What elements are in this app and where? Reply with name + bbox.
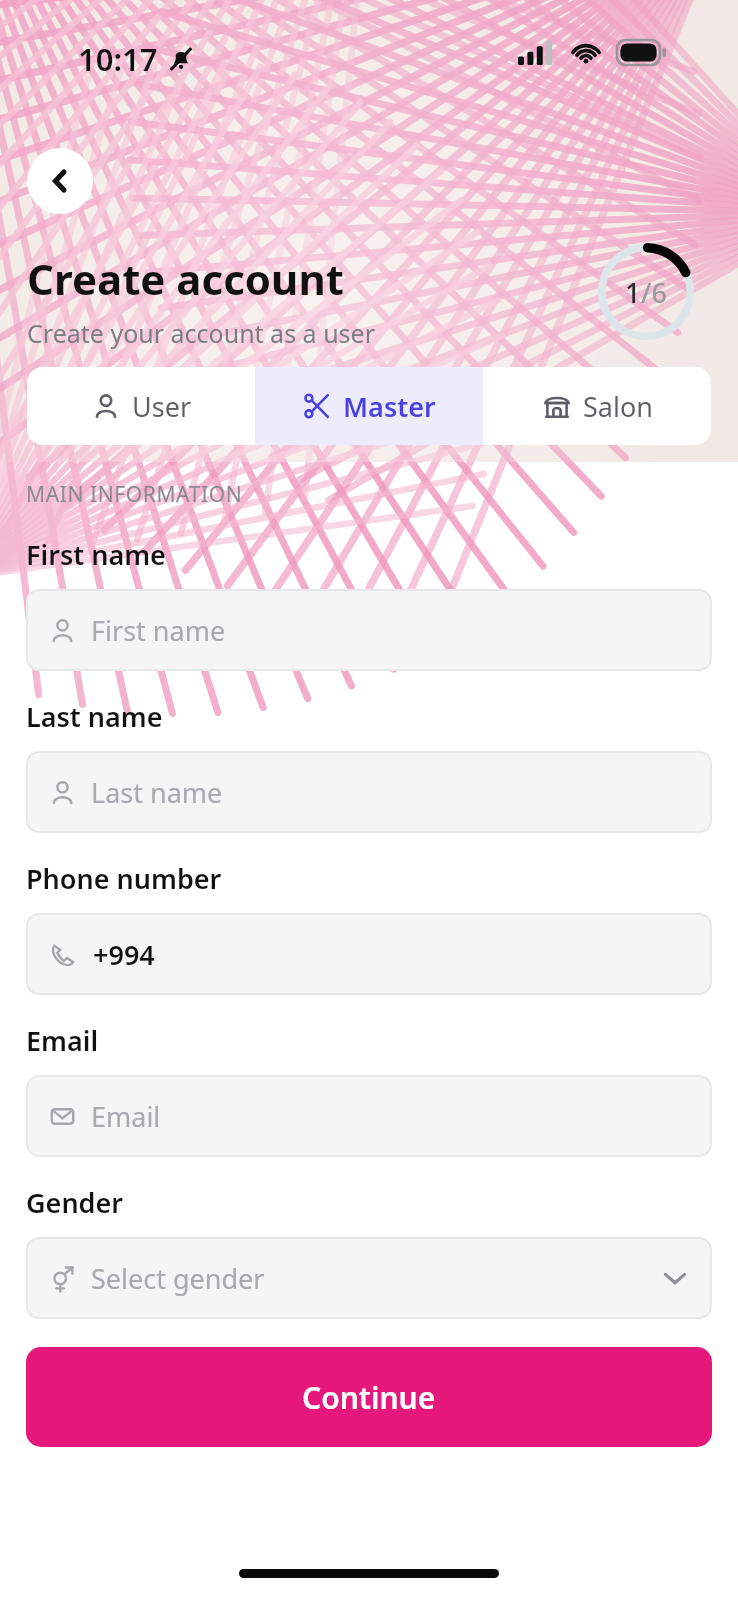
staticText: Email [26,1022,99,1059]
staticText: Create your account as a user [27,316,375,350]
button[interactable]: Back [27,148,93,214]
button[interactable]: Email [26,1075,712,1157]
staticText: Last name [26,698,163,735]
button[interactable]: Continue [26,1347,712,1447]
staticText: Last name [91,774,223,811]
staticText: 10:17 [78,38,158,80]
staticText: Select gender [91,1260,265,1297]
staticText: Create account [27,250,344,307]
staticText: User [132,388,192,425]
button[interactable]: Select gender [26,1237,712,1319]
button[interactable]: Last name [26,751,712,833]
staticText: 1 [625,274,641,311]
staticText: First name [91,612,226,649]
button[interactable]: User [27,367,255,445]
staticText: /6 [641,274,667,311]
staticText: Salon [583,388,653,425]
button[interactable]: Master [255,367,483,445]
staticText: MAIN INFORMATION [26,480,243,509]
staticText: Continue [302,1377,436,1418]
staticText: Master [343,388,436,425]
button[interactable]: +994 [26,913,712,995]
staticText: Email [91,1098,161,1135]
staticText: Gender [26,1184,124,1221]
staticText: Phone number [26,860,222,897]
staticText: First name [26,536,166,573]
button[interactable]: Salon [483,367,711,445]
button[interactable]: First name [26,589,712,671]
staticText: +994 [93,936,155,973]
